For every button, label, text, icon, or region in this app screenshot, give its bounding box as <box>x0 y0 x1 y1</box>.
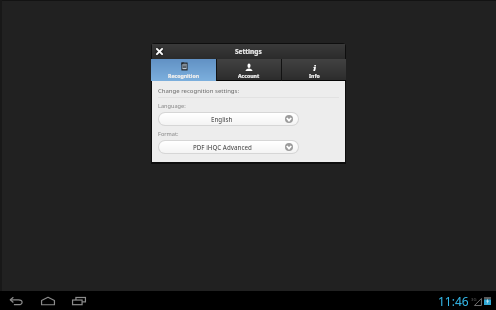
button[interactable]: i <box>282 59 346 81</box>
staticText: Format: <box>158 130 179 138</box>
staticText: Change recognition settings: <box>158 87 240 95</box>
button[interactable]: Home <box>32 291 63 310</box>
staticText: Language: <box>158 102 186 110</box>
staticText: Recognition <box>168 72 200 79</box>
staticText: 11:46 <box>438 293 469 309</box>
button[interactable]: PDF iHQC Advanced <box>159 141 298 153</box>
button[interactable]: Close <box>153 45 166 58</box>
staticText: Account <box>238 72 260 79</box>
button[interactable]: Account <box>217 59 281 81</box>
staticText: 3G <box>471 297 477 303</box>
staticText: Info <box>309 72 320 79</box>
button[interactable]: Back <box>0 291 32 310</box>
staticText: i <box>313 62 317 71</box>
button[interactable]: Recents <box>63 291 94 310</box>
staticText: Settings <box>235 47 262 56</box>
button[interactable]: English <box>159 113 298 125</box>
staticText: English <box>211 115 233 123</box>
staticText: PDF iHQC Advanced <box>193 143 252 151</box>
button[interactable]: Recognition <box>151 59 216 81</box>
